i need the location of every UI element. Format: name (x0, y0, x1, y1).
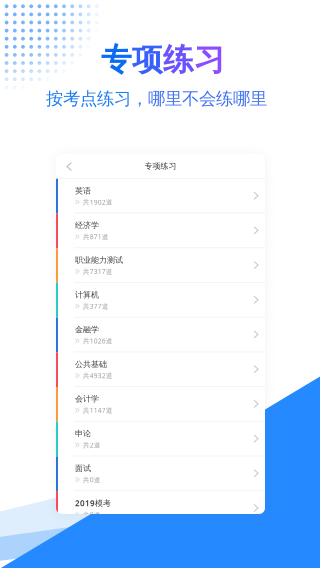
staticText: 共0道 (83, 475, 101, 484)
button[interactable]: 2019模考 (56, 491, 265, 526)
staticText: 共2道 (83, 440, 101, 449)
staticText: 哪里不会练哪里 (148, 88, 267, 109)
staticText: 按考点练习， (46, 88, 148, 109)
button[interactable]: Back (56, 157, 80, 175)
staticText: 职业能力测试 (75, 255, 123, 265)
button[interactable]: 公共基础 (56, 352, 265, 387)
button[interactable]: 计算机 (56, 283, 265, 318)
staticText: 练 (163, 41, 194, 79)
staticText: 共4932道 (83, 371, 113, 380)
button[interactable]: 金融学 (56, 318, 265, 352)
staticText: 专项练习 (144, 161, 176, 171)
button[interactable]: 经济学 (56, 213, 265, 248)
staticText: 习 (194, 41, 225, 79)
staticText: 共377道 (83, 302, 109, 311)
staticText: 共1147道 (83, 406, 113, 415)
staticText: 共1026道 (83, 336, 113, 345)
staticText: 共1902道 (83, 198, 113, 206)
button[interactable]: 面试 (56, 456, 265, 491)
staticText: 共0道 (83, 510, 101, 519)
staticText: 2019模考 (75, 498, 111, 508)
staticText: 英语 (75, 186, 91, 196)
staticText: 公共基础 (75, 359, 107, 369)
staticText: 计算机 (75, 290, 99, 300)
staticText: 会计学 (75, 394, 99, 404)
staticText: 共871道 (83, 232, 109, 241)
staticText: 申论 (75, 429, 91, 438)
staticText: 金融学 (75, 325, 99, 334)
staticText: 经济学 (75, 220, 99, 230)
button[interactable]: 申论 (56, 422, 265, 456)
button[interactable]: 职业能力测试 (56, 248, 265, 283)
staticText: 专 (101, 41, 132, 79)
button[interactable]: 会计学 (56, 387, 265, 422)
staticText: 面试 (75, 463, 91, 473)
button[interactable]: 英语 (56, 179, 265, 213)
staticText: 项 (132, 41, 163, 79)
staticText: 共7317道 (83, 267, 113, 276)
